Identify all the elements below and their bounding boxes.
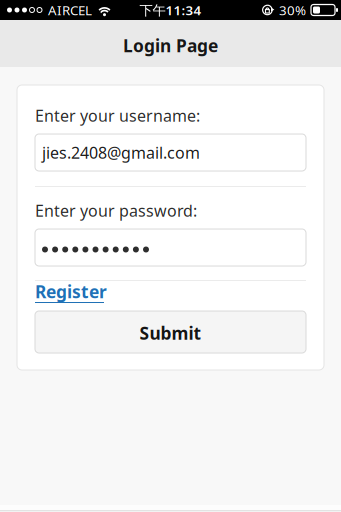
staticText: jies.2408@gmail.com: [42, 142, 200, 163]
button[interactable]: Register: [35, 284, 306, 304]
staticText: Register: [35, 280, 107, 303]
staticText: AIRCEL: [48, 1, 92, 19]
staticText: Enter your password:: [35, 200, 197, 221]
button[interactable]: Submit: [35, 311, 306, 353]
staticText: Enter your username:: [35, 105, 200, 126]
staticText: Login Page: [123, 34, 218, 57]
staticText: 下午11:34: [139, 1, 201, 19]
staticText: Submit: [139, 321, 201, 344]
staticText: 30%: [279, 1, 306, 19]
